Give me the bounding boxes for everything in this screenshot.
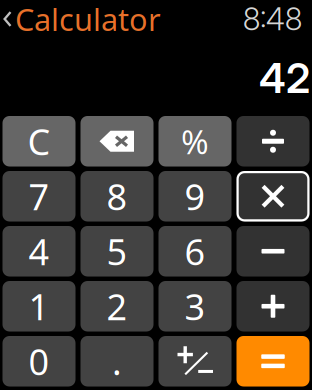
staticText: 0 [28,337,49,385]
button[interactable]: Delete [80,116,153,166]
staticText: 8 [106,172,127,220]
button[interactable]: 2 [80,281,153,331]
staticText: C [27,117,50,165]
button[interactable]: 1 [2,281,75,331]
button[interactable]: Add [236,281,309,331]
staticText: 1 [28,282,49,330]
button[interactable]: 0 [2,336,75,386]
button[interactable]: Multiply [236,171,309,221]
staticText: 4 [28,227,49,275]
button[interactable]: Equals [236,336,309,386]
staticText: 8:48 [243,0,302,37]
button[interactable]: 9 [158,171,231,221]
button[interactable]: Plus minus [158,336,231,386]
staticText: Calculator [15,0,161,39]
staticText: 9 [184,172,205,220]
button[interactable]: 5 [80,226,153,276]
button[interactable]: Subtract [236,226,309,276]
staticText: 5 [106,227,127,275]
staticText: . [112,337,122,385]
staticText: 7 [28,172,49,220]
button[interactable]: 4 [2,226,75,276]
button[interactable]: 6 [158,226,231,276]
button[interactable]: 8 [80,171,153,221]
button[interactable]: Calculator [0,0,161,42]
button[interactable]: 7 [2,171,75,221]
staticText: 3 [184,282,205,330]
button[interactable]: Divide [236,116,309,166]
button[interactable]: 3 [158,281,231,331]
button[interactable]: Decimal point [80,336,153,386]
button[interactable]: Clear [2,116,75,166]
staticText: 6 [184,227,205,275]
button[interactable]: Percent [158,116,231,166]
staticText: 42 [259,53,310,103]
staticText: % [181,119,209,163]
staticText: 2 [106,282,127,330]
